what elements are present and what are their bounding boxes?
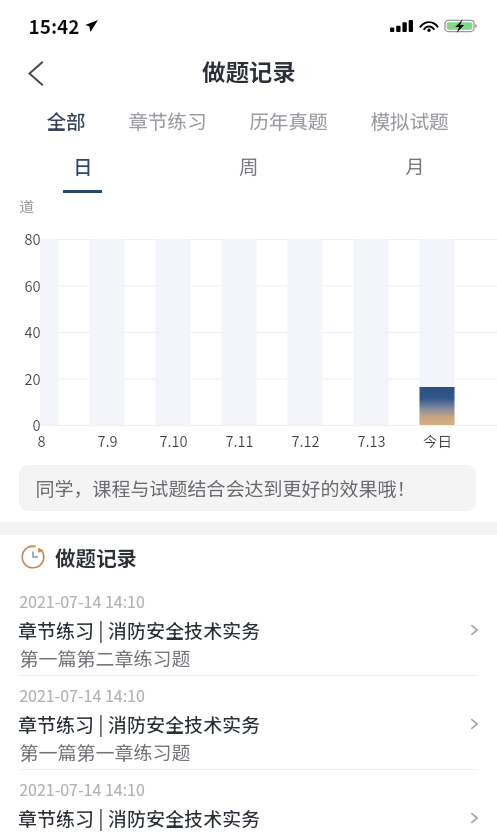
button[interactable]: 全部 — [46, 99, 86, 140]
button[interactable]: 2021-07-14 14:10 — [0, 767, 497, 833]
staticText: 全部 — [46, 106, 86, 134]
staticText: 章节练习 | 消防安全技术实务 — [18, 804, 260, 832]
staticText: 做题记录 — [202, 54, 296, 88]
staticText: 7.10 — [159, 430, 188, 451]
staticText: 7.11 — [225, 430, 254, 451]
button[interactable]: 周 — [165, 140, 331, 196]
staticText: 40 — [24, 321, 41, 342]
button[interactable]: 同学，课程与试题结合会达到更好的效果哦！ — [19, 465, 476, 511]
button[interactable]: Back — [15, 53, 55, 93]
button[interactable]: 模拟试题 — [370, 99, 449, 140]
button[interactable]: 2021-07-14 14:10 — [0, 579, 497, 673]
staticText: 道 — [19, 195, 34, 216]
staticText: 60 — [24, 275, 41, 296]
staticText: 2021-07-14 14:10 — [19, 777, 145, 800]
staticText: 周 — [239, 151, 259, 179]
button[interactable]: 2021-07-14 14:10 — [0, 673, 497, 767]
staticText: 做题记录 — [55, 542, 137, 572]
staticText: 第一篇第二章练习题 — [19, 644, 191, 672]
staticText: 20 — [24, 368, 41, 389]
staticText: 15:42 — [28, 12, 80, 40]
button[interactable]: 日 — [0, 140, 165, 196]
staticText: 今日 — [423, 430, 452, 451]
staticText: 月 — [405, 151, 425, 179]
staticText: 2021-07-14 14:10 — [19, 683, 145, 706]
staticText: 模拟试题 — [370, 106, 449, 134]
staticText: 日 — [73, 151, 93, 179]
staticText: 7.9 — [97, 430, 118, 451]
staticText: 7.13 — [357, 430, 386, 451]
staticText: 章节练习 | 消防安全技术实务 — [18, 710, 260, 738]
staticText: 历年真题 — [249, 106, 328, 134]
staticText: 7.12 — [291, 430, 320, 451]
button[interactable]: 月 — [331, 140, 497, 196]
staticText: 章节练习 — [128, 106, 207, 134]
staticText: 章节练习 | 消防安全技术实务 — [18, 616, 260, 644]
staticText: 2021-07-14 14:10 — [19, 589, 145, 612]
button[interactable]: 章节练习 — [128, 99, 207, 140]
button[interactable]: 历年真题 — [249, 99, 328, 140]
staticText: 80 — [24, 228, 41, 249]
staticText: 第一篇第一章练习题 — [19, 738, 191, 766]
staticText: 0 — [32, 414, 41, 435]
staticText: 同学，课程与试题结合会达到更好的效果哦！ — [35, 474, 416, 502]
staticText: 8 — [37, 430, 46, 451]
